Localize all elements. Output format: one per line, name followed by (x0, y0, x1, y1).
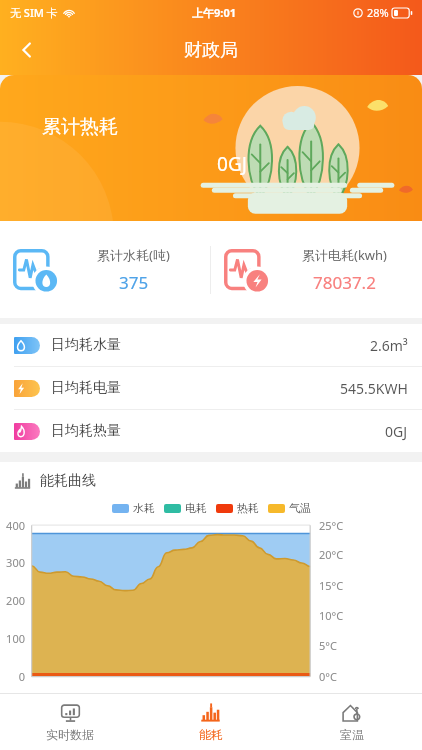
staticText: 20°C (319, 547, 344, 562)
button[interactable]: 能耗 (140, 694, 281, 750)
button[interactable]: 实时数据 (0, 694, 140, 750)
staticText: 日均耗电量 (51, 379, 121, 397)
staticText: 累计电耗(kwh) (302, 246, 387, 264)
button[interactable]: 累计水耗(吨) (0, 221, 210, 318)
button[interactable]: 日均耗热量 (0, 410, 422, 452)
button[interactable]: Back (5, 28, 49, 72)
staticText: 累计水耗(吨) (97, 246, 170, 264)
staticText: 78037.2 (313, 271, 376, 294)
staticText: 0 (18, 669, 25, 684)
staticText: 545.5KWH (340, 379, 408, 398)
staticText: 上午9:01 (192, 5, 236, 20)
staticText: 无 SIM 卡 (10, 5, 58, 20)
staticText: 5°C (319, 638, 337, 653)
staticText: 0GJ (385, 422, 408, 441)
button[interactable]: 累计电耗(kwh) (211, 221, 422, 318)
button[interactable]: 日均耗水量 (0, 324, 422, 366)
staticText: 10°C (319, 608, 344, 623)
staticText: 实时数据 (46, 727, 94, 742)
staticText: 25°C (319, 518, 344, 533)
staticText: 能耗曲线 (40, 472, 96, 490)
staticText: 28% (367, 5, 389, 20)
staticText: 室温 (340, 727, 364, 742)
staticText: 日均耗热量 (51, 422, 121, 440)
staticText: 0°C (319, 669, 337, 684)
staticText: 日均耗水量 (51, 336, 121, 354)
button[interactable]: 室温 (281, 694, 422, 750)
staticText: 电耗 (185, 501, 207, 515)
staticText: 热耗 (237, 501, 259, 515)
staticText: 财政局 (184, 39, 238, 62)
staticText: 300 (6, 555, 25, 570)
staticText: 15°C (319, 578, 344, 593)
staticText: 水耗 (133, 501, 155, 515)
staticText: 气温 (289, 501, 311, 515)
button[interactable]: 日均耗电量 (0, 367, 422, 409)
staticText: 累计热耗 (42, 115, 118, 139)
staticText: 2.6m³ (370, 336, 408, 355)
staticText: 200 (6, 593, 25, 608)
staticText: 能耗 (199, 727, 223, 742)
staticText: 400 (6, 518, 25, 533)
staticText: 100 (6, 631, 25, 646)
staticText: 375 (119, 271, 149, 294)
staticText: 0GJ (42, 151, 422, 177)
